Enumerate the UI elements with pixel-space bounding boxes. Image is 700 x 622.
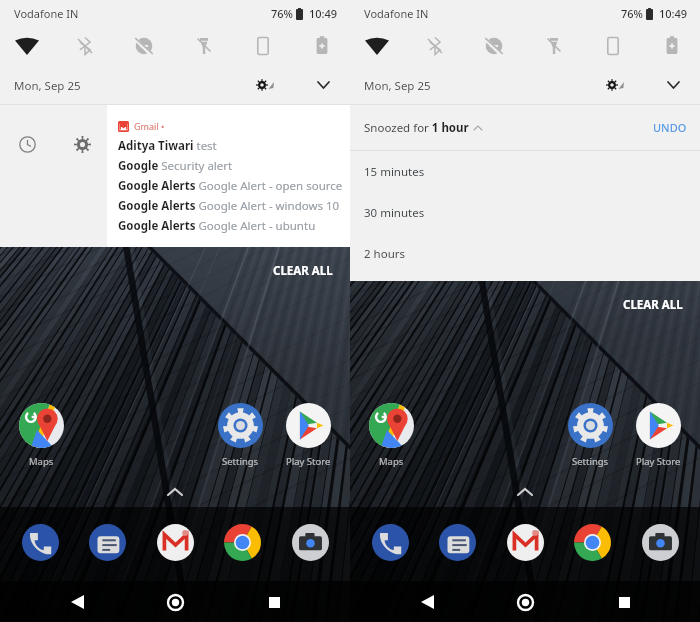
button[interactable]: Settings bbox=[557, 403, 623, 468]
staticText: CLEAR ALL bbox=[273, 263, 333, 279]
staticText: 15 minutes bbox=[364, 164, 425, 180]
button[interactable]: Play Store bbox=[275, 403, 341, 468]
staticText: 30 minutes bbox=[364, 205, 425, 221]
staticText: 76% bbox=[271, 6, 293, 21]
button[interactable]: Chrome bbox=[570, 520, 614, 564]
button[interactable]: Settings bbox=[248, 68, 282, 102]
button[interactable]: 15 minutes bbox=[350, 151, 700, 192]
button[interactable]: All apps bbox=[163, 484, 187, 500]
button[interactable]: Settings bbox=[207, 403, 273, 468]
button[interactable]: 2 hours bbox=[350, 233, 700, 274]
staticText: Mon, Sep 25 bbox=[14, 78, 81, 94]
button[interactable]: Back bbox=[58, 583, 96, 621]
staticText: Gmail • bbox=[134, 120, 165, 132]
staticText: Play Store bbox=[286, 455, 331, 468]
button[interactable]: CLEAR ALL bbox=[266, 258, 340, 284]
button[interactable]: Play Store bbox=[625, 403, 691, 468]
button[interactable]: Gmail bbox=[503, 520, 547, 564]
button[interactable]: Maps bbox=[8, 403, 74, 468]
button[interactable]: Home bbox=[156, 583, 194, 621]
button[interactable]: Gmail bbox=[153, 520, 197, 564]
button[interactable]: Gmail • bbox=[107, 105, 350, 247]
staticText: Maps bbox=[379, 455, 404, 468]
staticText: 10:49 bbox=[659, 6, 688, 21]
button[interactable]: Settings bbox=[598, 68, 632, 102]
staticText: Mon, Sep 25 bbox=[364, 78, 431, 94]
staticText: Play Store bbox=[636, 455, 681, 468]
staticText: Google Security alert bbox=[118, 158, 233, 174]
staticText: 10:49 bbox=[309, 6, 338, 21]
button[interactable]: Messages bbox=[85, 520, 129, 564]
button[interactable]: Maps bbox=[358, 403, 424, 468]
button[interactable]: CLEAR ALL bbox=[616, 292, 690, 318]
staticText: Snoozed for 1 hour bbox=[364, 120, 469, 136]
button[interactable]: Camera bbox=[638, 520, 682, 564]
staticText: Google Alerts Google Alert - ubuntu bbox=[118, 218, 316, 234]
staticText: Maps bbox=[29, 455, 54, 468]
staticText: Google Alerts Google Alert - open source bbox=[118, 178, 343, 194]
staticText: Settings bbox=[222, 455, 259, 468]
button[interactable]: Camera bbox=[288, 520, 332, 564]
button[interactable]: Phone bbox=[368, 520, 412, 564]
button[interactable]: Home bbox=[506, 583, 544, 621]
staticText: UNDO bbox=[653, 120, 687, 135]
button[interactable]: Chrome bbox=[220, 520, 264, 564]
button[interactable]: Expand bbox=[308, 70, 338, 100]
button[interactable]: Expand bbox=[658, 70, 688, 100]
staticText: Vodafone IN bbox=[364, 6, 429, 21]
staticText: 2 hours bbox=[364, 246, 405, 262]
button[interactable]: Phone bbox=[18, 520, 62, 564]
button[interactable]: Messages bbox=[435, 520, 479, 564]
button[interactable]: Recents bbox=[255, 583, 293, 621]
staticText: 76% bbox=[621, 6, 643, 21]
staticText: CLEAR ALL bbox=[623, 297, 683, 313]
staticText: Aditya Tiwari test bbox=[118, 138, 217, 154]
staticText: Google Alerts Google Alert - windows 10 bbox=[118, 198, 340, 214]
staticText: Settings bbox=[572, 455, 609, 468]
button[interactable]: Snoozed for 1 hour bbox=[350, 105, 700, 150]
button[interactable]: Back bbox=[408, 583, 446, 621]
button[interactable]: Snooze bbox=[4, 121, 50, 167]
button[interactable]: Recents bbox=[605, 583, 643, 621]
button[interactable]: Notification settings bbox=[59, 121, 105, 167]
button[interactable]: All apps bbox=[513, 484, 537, 500]
staticText: Vodafone IN bbox=[14, 6, 79, 21]
button[interactable]: 30 minutes bbox=[350, 192, 700, 233]
